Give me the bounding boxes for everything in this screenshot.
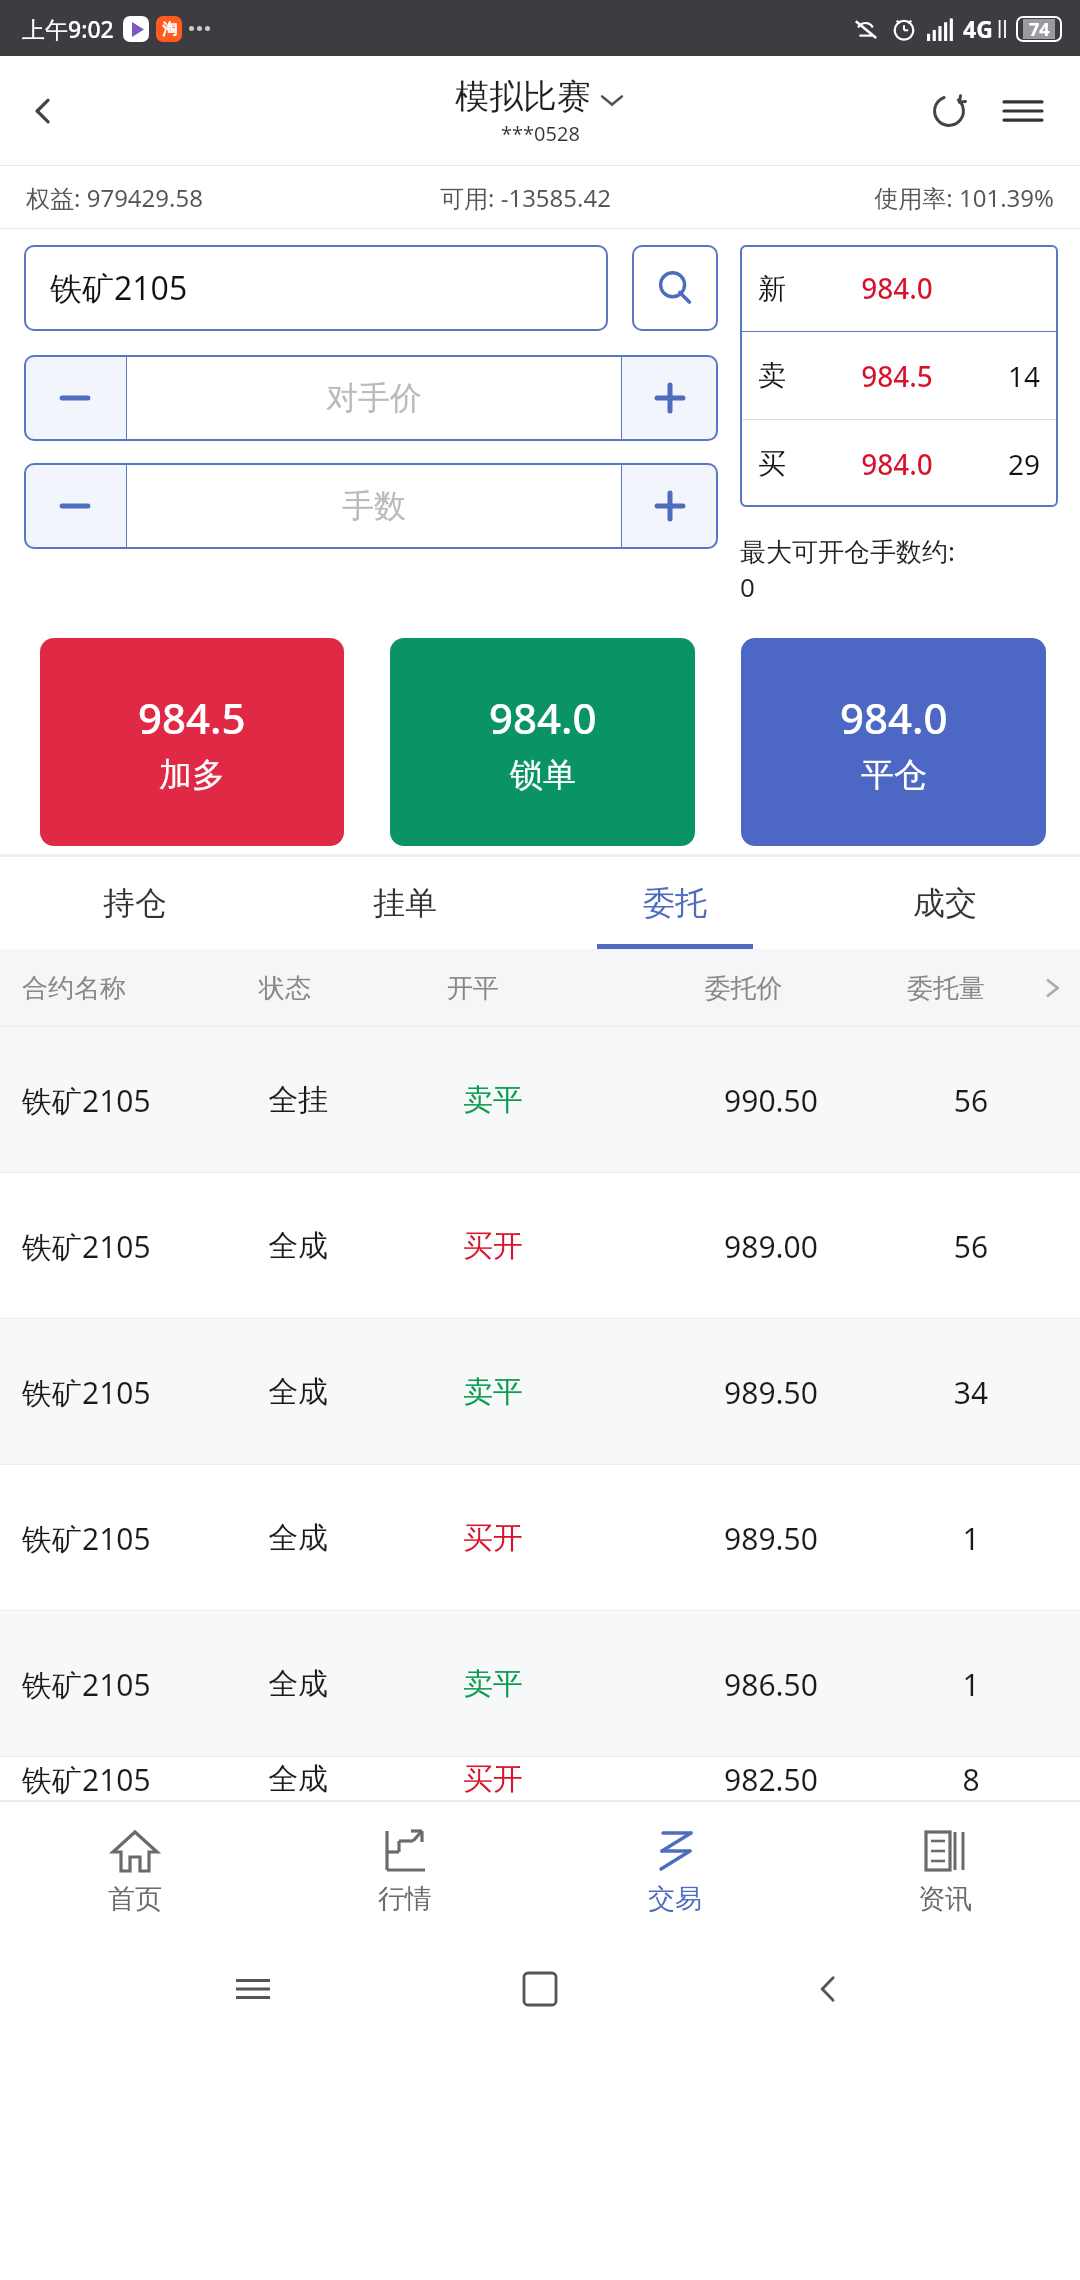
button[interactable]: Decrease	[24, 463, 126, 549]
staticText: 990.50	[658, 1080, 884, 1121]
button[interactable]: 卖	[740, 332, 1058, 419]
staticText: 铁矿2105	[50, 266, 188, 310]
staticText: 买	[758, 446, 808, 481]
staticText: 984.5	[808, 357, 986, 395]
staticText: 982.50	[658, 1759, 884, 1800]
button[interactable]: 持仓	[0, 857, 270, 949]
staticText: 铁矿2105	[22, 1372, 268, 1413]
staticText: 29	[986, 445, 1040, 483]
button[interactable]: 交易	[540, 1801, 810, 1941]
button[interactable]: 买	[740, 420, 1058, 507]
button[interactable]: 模拟比赛	[455, 75, 625, 147]
button[interactable]: 成交	[810, 857, 1080, 949]
staticText: 984.5	[138, 689, 246, 746]
button[interactable]: 新	[740, 245, 1058, 331]
button[interactable]: 铁矿2105	[0, 1465, 1080, 1611]
staticText: 新	[758, 271, 808, 306]
button[interactable]: 铁矿2105	[0, 1757, 1080, 1801]
staticText: 984.0	[840, 689, 948, 746]
staticText: 模拟比赛	[455, 75, 591, 118]
staticText: 手数	[342, 486, 406, 526]
button[interactable]: Search	[632, 245, 718, 331]
button[interactable]: Home	[505, 1954, 575, 2024]
button[interactable]: 资讯	[810, 1801, 1080, 1941]
staticText: 淘	[162, 20, 177, 39]
button[interactable]: 铁矿2105	[24, 245, 608, 331]
staticText: 4G	[963, 13, 993, 44]
staticText: 加多	[159, 754, 225, 796]
button[interactable]: 铁矿2105	[0, 1027, 1080, 1173]
staticText: 权益: 979429.58	[26, 181, 440, 214]
staticText: 委托量	[852, 972, 1040, 1005]
button[interactable]: 铁矿2105	[0, 1611, 1080, 1757]
staticText: 资讯	[918, 1882, 972, 1916]
staticText: 上午9:02	[22, 13, 114, 44]
staticText: 最大可开仓手数约:	[740, 533, 955, 569]
staticText: 可用: -13585.42	[440, 181, 874, 214]
staticText: 铁矿2105	[22, 1226, 268, 1267]
button[interactable]: Decrease	[24, 355, 126, 441]
button[interactable]: 铁矿2105	[0, 1319, 1080, 1465]
staticText: 1	[884, 1664, 1058, 1705]
staticText: 卖平	[463, 1081, 658, 1119]
button[interactable]: Back	[793, 1954, 863, 2024]
staticText: 全成	[268, 1519, 463, 1557]
staticText: 卖	[758, 358, 808, 393]
button[interactable]: 984.0	[390, 638, 695, 846]
button[interactable]: Increase	[622, 355, 718, 441]
button[interactable]: Increase	[622, 463, 718, 549]
staticText: 委托	[643, 883, 707, 923]
button[interactable]: 984.5	[40, 638, 344, 846]
button[interactable]: Menu	[986, 74, 1060, 148]
staticText: 锁单	[510, 754, 576, 796]
staticText: 持仓	[103, 883, 167, 923]
staticText: 1	[884, 1518, 1058, 1559]
staticText: 使用率: 101.39%	[874, 181, 1054, 214]
button[interactable]: 984.0	[741, 638, 1046, 846]
staticText: 买开	[463, 1760, 658, 1798]
staticText: 984.0	[808, 445, 986, 483]
staticText: 卖平	[463, 1373, 658, 1411]
button[interactable]: 首页	[0, 1801, 270, 1941]
button[interactable]: Recents	[218, 1954, 288, 2024]
staticText: 8	[884, 1759, 1058, 1800]
staticText: 14	[986, 357, 1040, 395]
staticText: 全成	[268, 1227, 463, 1265]
staticText: 全挂	[268, 1081, 463, 1119]
staticText: ***0528	[501, 120, 580, 147]
staticText: 合约名称	[22, 972, 259, 1005]
staticText: 74	[1029, 17, 1050, 42]
button[interactable]: 挂单	[270, 857, 540, 949]
staticText: 984.0	[489, 689, 597, 746]
button[interactable]: 委托	[540, 857, 810, 949]
staticText: 行情	[378, 1882, 432, 1916]
staticText: 全成	[268, 1760, 463, 1798]
staticText: 34	[884, 1372, 1058, 1413]
staticText: 成交	[913, 883, 977, 923]
staticText: 989.00	[658, 1226, 884, 1267]
staticText: 全成	[268, 1373, 463, 1411]
staticText: 铁矿2105	[22, 1518, 268, 1559]
staticText: 56	[884, 1080, 1058, 1121]
staticText: 开平	[447, 972, 635, 1005]
staticText: 买开	[463, 1519, 658, 1557]
staticText: 0	[740, 569, 755, 604]
staticText: 买开	[463, 1227, 658, 1265]
button[interactable]: 手数	[127, 463, 621, 549]
button[interactable]: Refresh	[912, 74, 986, 148]
staticText: 委托价	[635, 972, 852, 1005]
staticText: 平仓	[861, 754, 927, 796]
staticText: 56	[884, 1226, 1058, 1267]
staticText: 984.0	[808, 269, 986, 307]
button[interactable]: 行情	[270, 1801, 540, 1941]
button[interactable]: Back	[0, 67, 88, 155]
button[interactable]: 对手价	[127, 355, 621, 441]
staticText: 铁矿2105	[22, 1080, 268, 1121]
staticText: 铁矿2105	[22, 1664, 268, 1705]
button[interactable]: 铁矿2105	[0, 1173, 1080, 1319]
staticText: 989.50	[658, 1518, 884, 1559]
staticText: 铁矿2105	[22, 1759, 268, 1800]
staticText: 全成	[268, 1665, 463, 1703]
staticText: 交易	[648, 1882, 702, 1916]
staticText: 986.50	[658, 1664, 884, 1705]
